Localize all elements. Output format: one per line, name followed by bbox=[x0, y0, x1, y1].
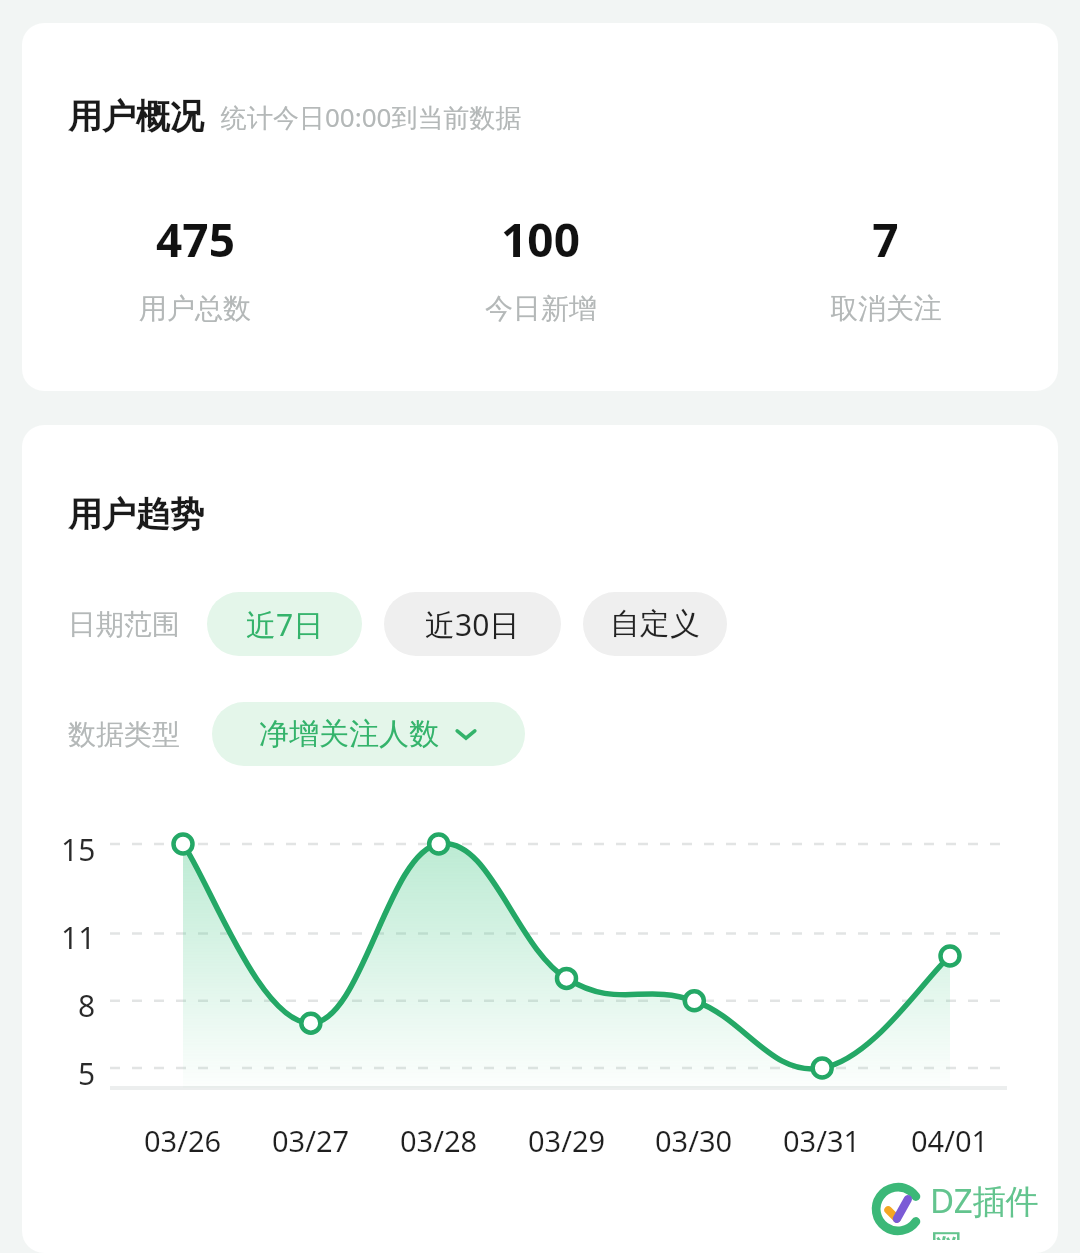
staticText: 净增关注人数 bbox=[259, 715, 439, 753]
staticText: 475 bbox=[156, 208, 235, 271]
staticText: 统计今日00:00到当前数据 bbox=[221, 99, 522, 135]
staticText: 数据类型 bbox=[68, 717, 180, 752]
staticText: 用户总数 bbox=[139, 291, 251, 326]
staticText: 03/26 bbox=[144, 1121, 222, 1160]
button[interactable]: 近30日 bbox=[384, 592, 561, 656]
button[interactable]: 净增关注人数 bbox=[212, 702, 525, 766]
staticText: 今日新增 bbox=[485, 291, 597, 326]
button[interactable]: 7 bbox=[713, 208, 1058, 326]
staticText: 7 bbox=[872, 208, 899, 271]
staticText: 近30日 bbox=[425, 604, 520, 645]
staticText: 近7日 bbox=[246, 604, 324, 645]
staticText: 自定义 bbox=[610, 605, 700, 643]
staticText: 8 bbox=[78, 985, 96, 1025]
staticText: DZ插件网 bbox=[930, 1178, 1062, 1240]
staticText: 100 bbox=[501, 208, 580, 271]
staticText: 04/01 bbox=[911, 1121, 989, 1160]
staticText: 11 bbox=[61, 917, 96, 957]
staticText: 取消关注 bbox=[830, 291, 942, 326]
staticText: 5 bbox=[78, 1053, 96, 1093]
staticText: 用户趋势 bbox=[68, 493, 204, 536]
button[interactable]: 100 bbox=[368, 208, 713, 326]
staticText: 03/27 bbox=[272, 1121, 350, 1160]
staticText: 日期范围 bbox=[68, 607, 180, 642]
staticText: 03/31 bbox=[783, 1121, 861, 1160]
staticText: 03/28 bbox=[400, 1121, 478, 1160]
button[interactable]: 自定义 bbox=[583, 592, 727, 656]
button[interactable]: 475 bbox=[22, 208, 368, 326]
staticText: 15 bbox=[61, 829, 96, 869]
staticText: 03/29 bbox=[528, 1121, 606, 1160]
staticText: 03/30 bbox=[655, 1121, 733, 1160]
button[interactable]: 近7日 bbox=[207, 592, 362, 656]
staticText: 用户概况 bbox=[68, 95, 204, 138]
